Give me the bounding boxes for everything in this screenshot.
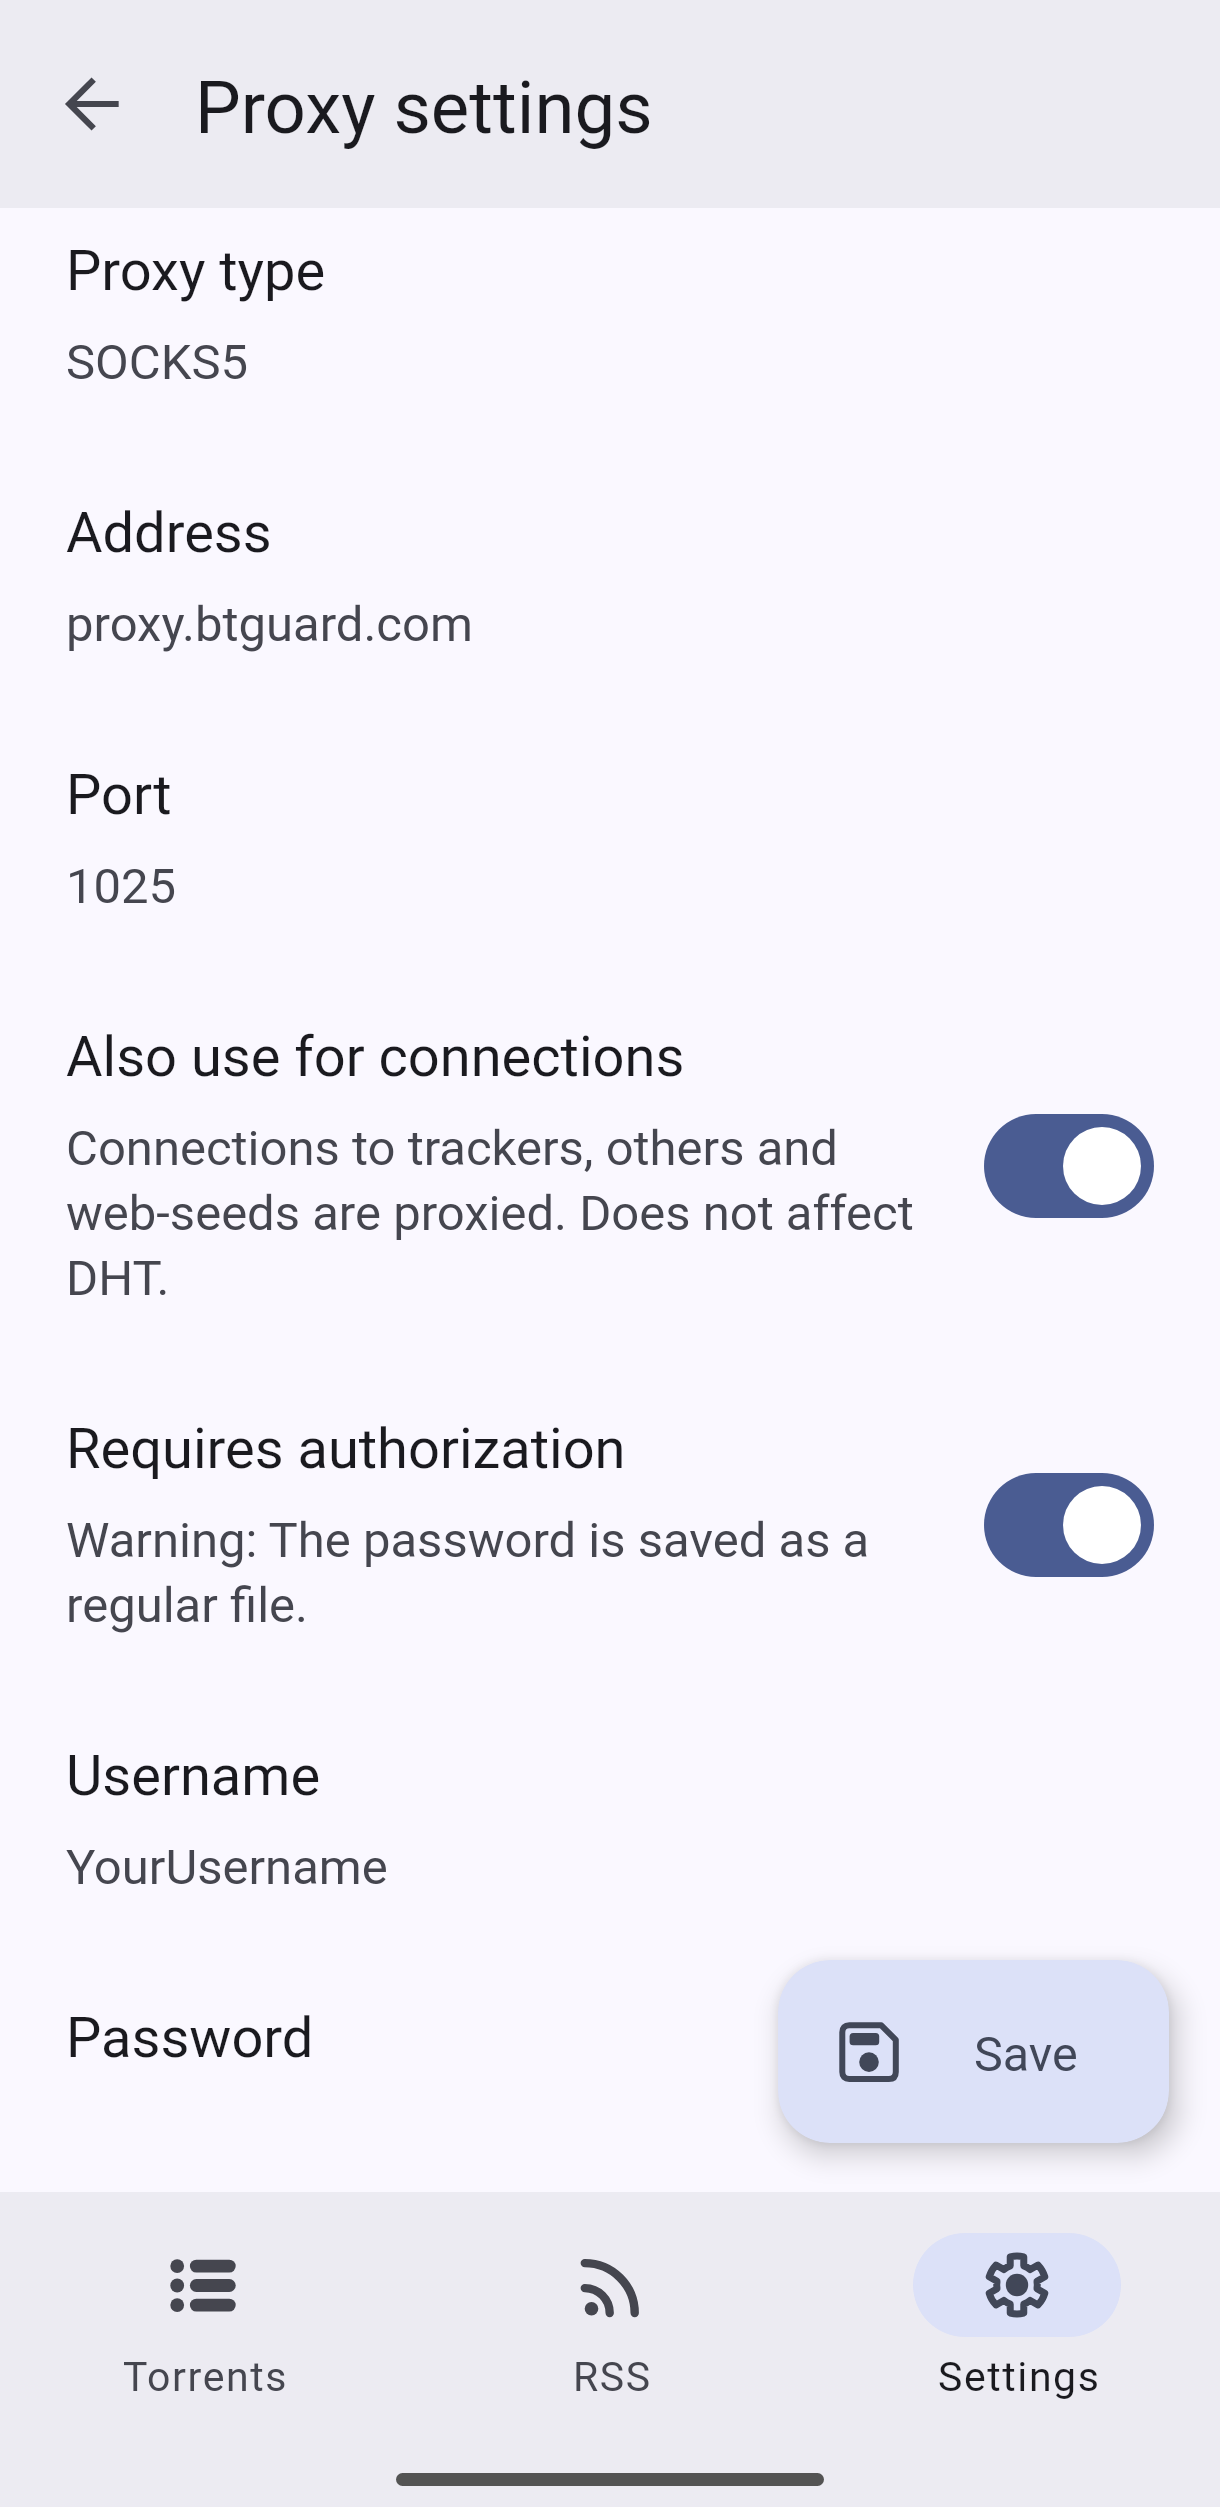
staticText: Torrents [123, 2353, 289, 2401]
staticText: 1025 [66, 858, 177, 915]
button[interactable] [984, 1473, 1154, 1577]
button[interactable]: Requires authorization [0, 1386, 1220, 1713]
button[interactable]: Password [0, 1975, 1220, 2150]
button[interactable]: Torrents [0, 2192, 406, 2452]
button[interactable]: Proxy type [0, 208, 1220, 470]
staticText: SOCKS5 [66, 334, 249, 391]
button[interactable]: Settings [813, 2192, 1220, 2452]
staticText: Save [974, 2026, 1078, 2083]
staticText: Port [66, 762, 172, 828]
staticText: RSS [573, 2353, 652, 2401]
staticText: YourUsername [66, 1839, 388, 1896]
button[interactable]: Port [0, 732, 1220, 994]
staticText: Warning: The password is saved as a regu… [66, 1512, 918, 1634]
button[interactable] [984, 1114, 1154, 1218]
staticText: Also use for connections [66, 1024, 685, 1090]
staticText: Requires authorization [66, 1416, 626, 1482]
button[interactable]: Address [0, 470, 1220, 732]
staticText: Password [66, 2005, 314, 2071]
staticText: Settings [938, 2353, 1101, 2401]
staticText: Proxy settings [195, 66, 653, 151]
button[interactable]: Save [778, 1960, 1169, 2143]
button[interactable]: RSS [406, 2192, 813, 2452]
staticText: Username [66, 1743, 321, 1809]
button[interactable]: Also use for connections [0, 994, 1220, 1386]
staticText: Address [66, 500, 272, 566]
staticText: proxy.btguard.com [66, 596, 473, 653]
button[interactable]: Back [16, 26, 172, 182]
button[interactable]: Username [0, 1713, 1220, 1975]
staticText: Proxy type [66, 238, 326, 304]
staticText: Connections to trackers, others and web-… [66, 1120, 918, 1307]
